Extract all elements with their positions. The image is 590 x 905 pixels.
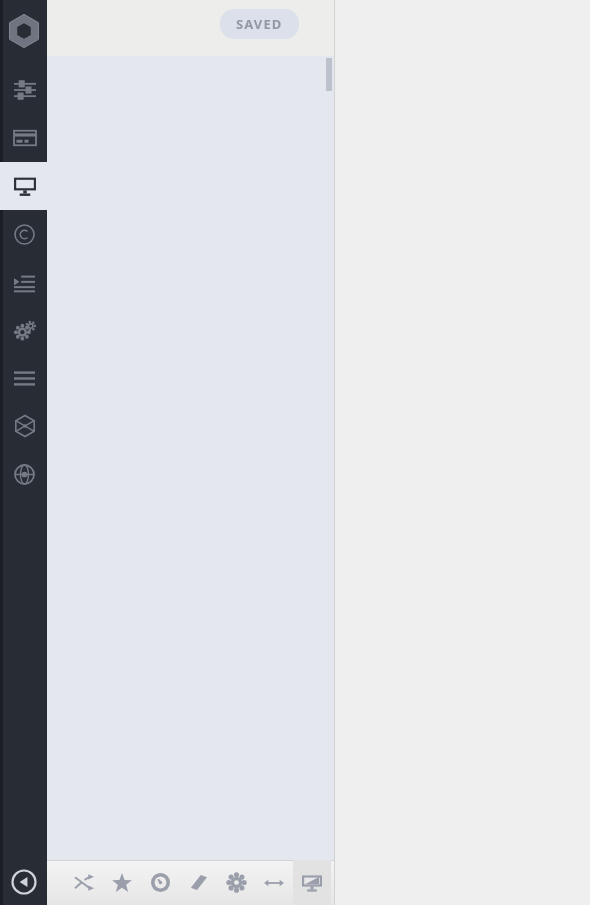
button[interactable]: Payments: [0, 114, 47, 162]
button[interactable]: Display: [0, 162, 47, 210]
button[interactable]: Preview: [293, 860, 331, 905]
button[interactable]: Library: [179, 860, 217, 905]
button[interactable]: Settings: [0, 306, 47, 354]
button[interactable]: Home: [0, 6, 47, 56]
button[interactable]: Menu: [0, 354, 47, 402]
button[interactable]: SAVED: [220, 9, 299, 39]
button[interactable]: Resize: [255, 860, 293, 905]
button[interactable]: Settings: [217, 860, 255, 905]
button[interactable]: Copyright: [0, 210, 47, 258]
button[interactable]: Performance: [141, 860, 179, 905]
button[interactable]: Support: [0, 450, 47, 498]
staticText: SAVED: [236, 15, 283, 33]
button[interactable]: Favorite: [103, 860, 141, 905]
button[interactable]: Collapse sidebar: [0, 859, 47, 905]
button[interactable]: List: [0, 258, 47, 306]
button[interactable]: Cube: [0, 402, 47, 450]
button[interactable]: Adjustments: [0, 66, 47, 114]
button[interactable]: Shuffle: [65, 860, 103, 905]
